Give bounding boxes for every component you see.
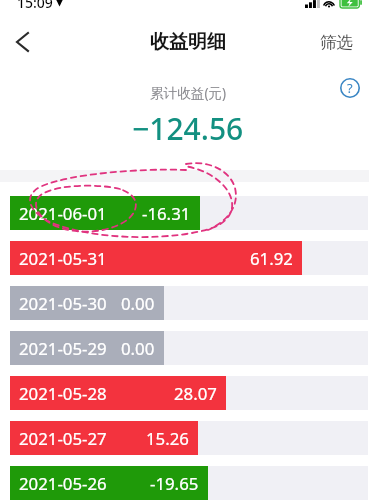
staticText: 61.92 xyxy=(250,247,293,270)
button[interactable]: 2021-05-29 xyxy=(10,331,164,365)
staticText: 2021-05-31 xyxy=(19,247,107,270)
staticText: 2021-05-29 xyxy=(19,337,107,360)
button[interactable]: 2021-05-30 xyxy=(10,286,164,320)
staticText: ? xyxy=(347,79,353,97)
staticText: 累计收益(元) xyxy=(150,83,227,102)
staticText: 0.00 xyxy=(121,292,155,315)
button[interactable]: Back xyxy=(0,20,44,64)
staticText: -16.31 xyxy=(142,202,191,225)
staticText: 2021-05-27 xyxy=(19,427,107,450)
staticText: 2021-05-26 xyxy=(19,472,107,495)
staticText: 筛选 xyxy=(320,32,353,53)
button[interactable]: 2021-05-28 xyxy=(10,376,226,410)
staticText: 15:09 xyxy=(17,0,53,12)
staticText: -19.65 xyxy=(150,472,199,495)
staticText: 2021-06-01 xyxy=(19,202,107,225)
staticText: 收益明细 xyxy=(150,30,226,54)
button[interactable]: 2021-06-01 xyxy=(10,196,200,230)
button[interactable]: 2021-05-31 xyxy=(10,241,302,275)
button[interactable]: 2021-05-27 xyxy=(10,421,198,455)
staticText: 28.07 xyxy=(174,382,217,405)
staticText: −124.56 xyxy=(132,108,244,149)
button[interactable]: 2021-05-26 xyxy=(10,466,208,500)
staticText: 15.26 xyxy=(146,427,189,450)
button[interactable]: Help xyxy=(340,78,360,98)
staticText: 2021-05-30 xyxy=(19,292,107,315)
staticText: 0.00 xyxy=(121,337,155,360)
button[interactable]: 筛选 xyxy=(312,26,361,59)
staticText: 2021-05-28 xyxy=(19,382,107,405)
